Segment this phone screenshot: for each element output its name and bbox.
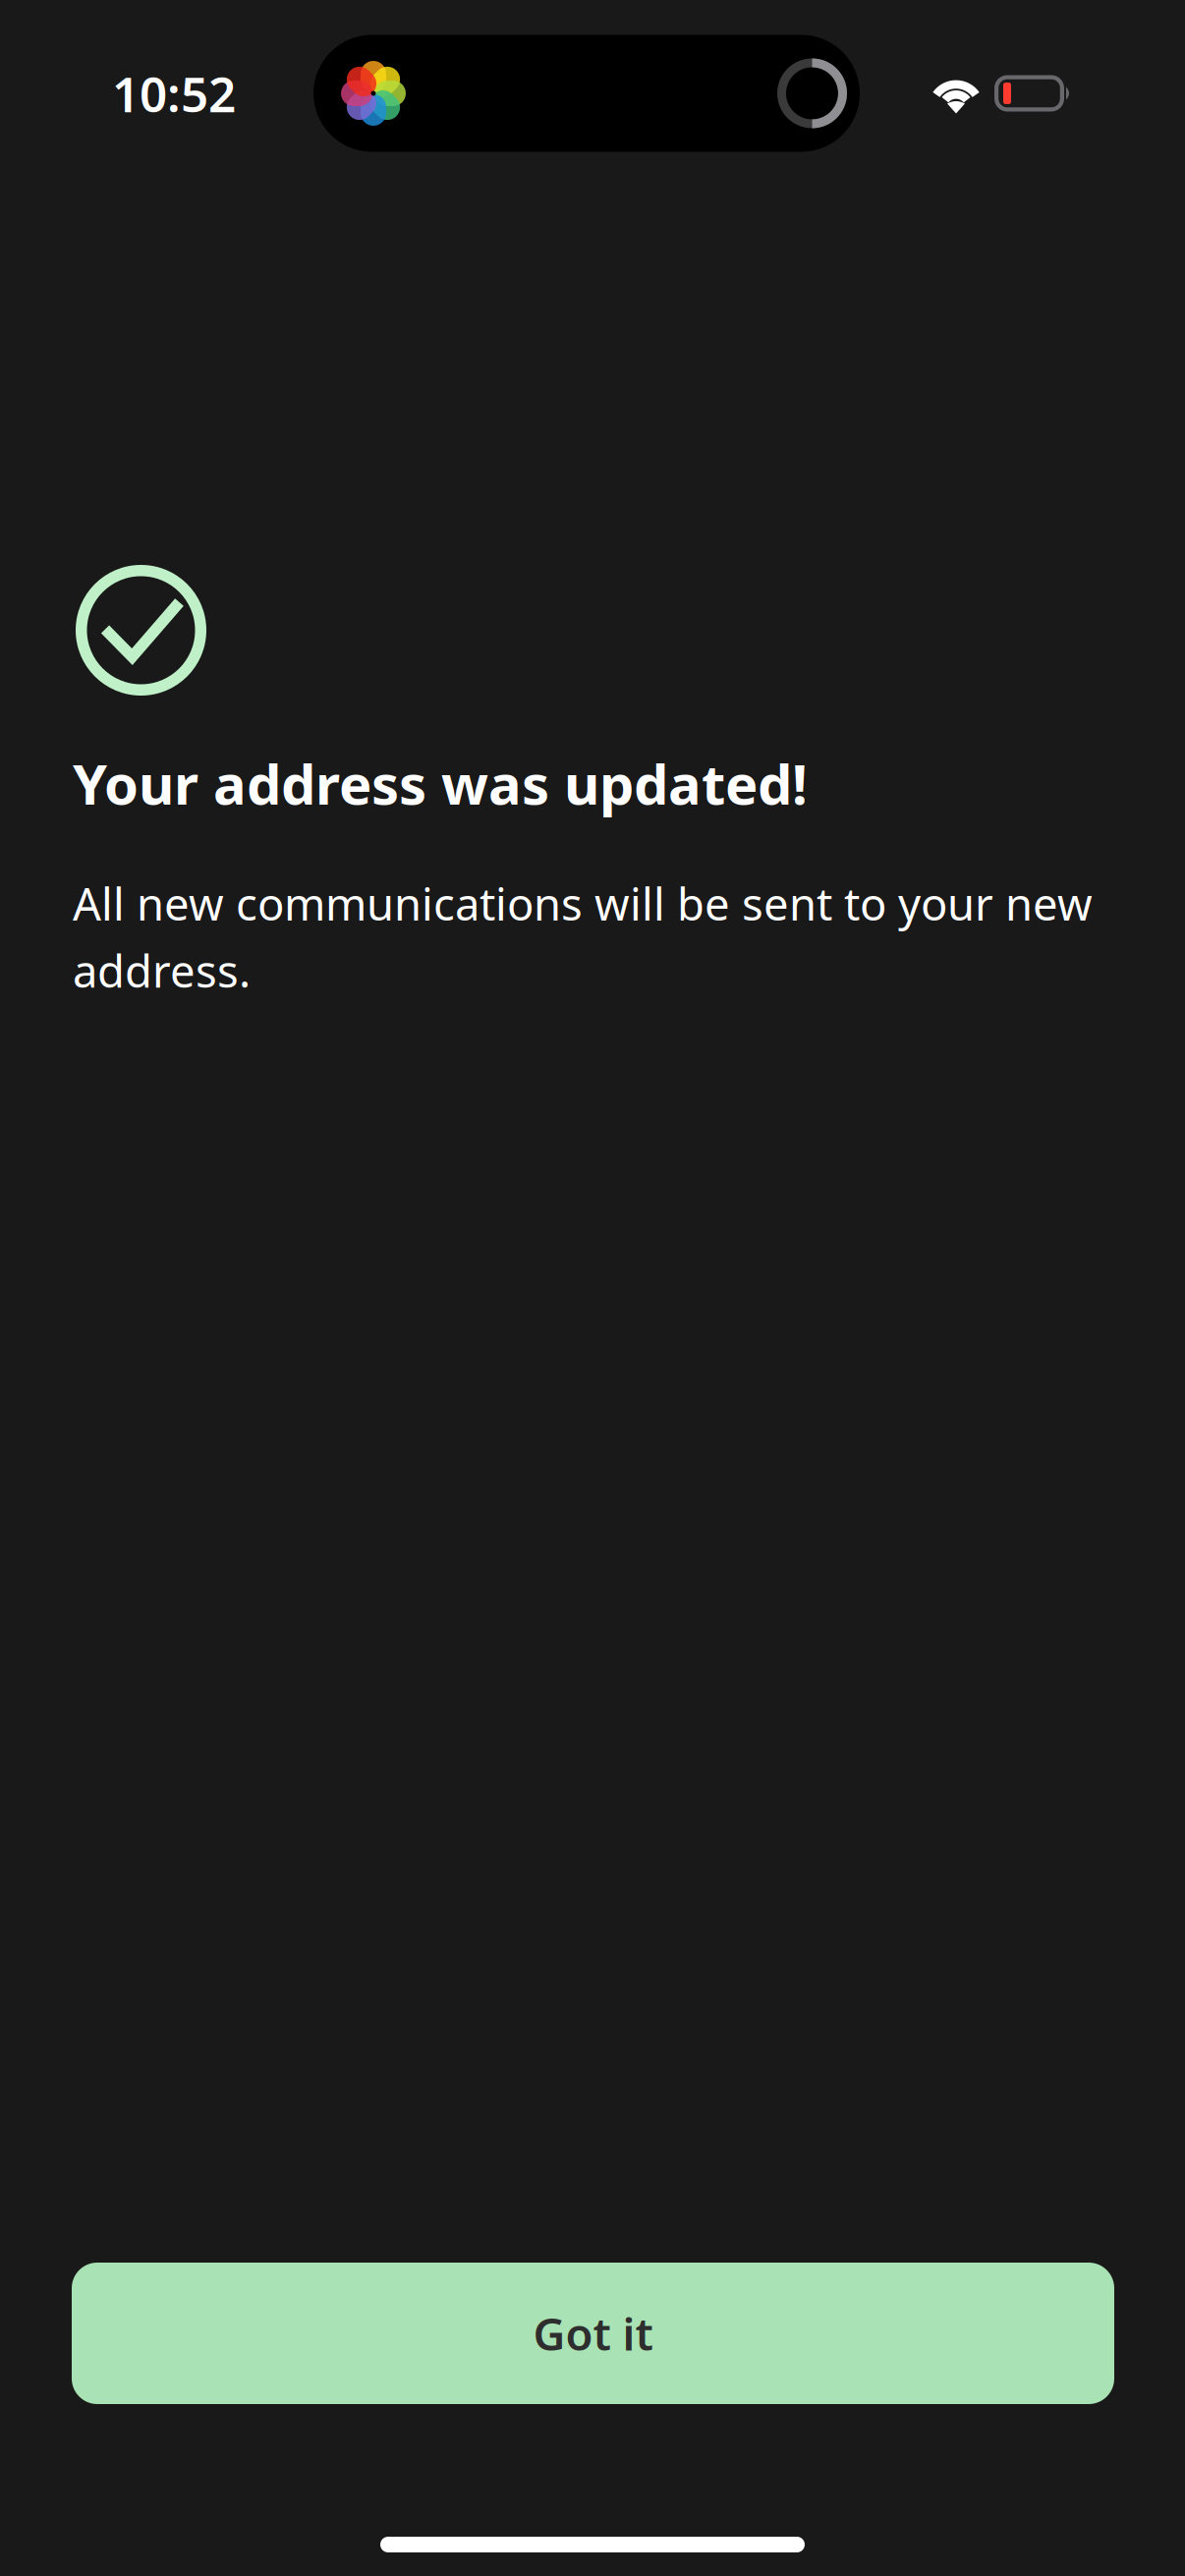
- button[interactable]: Got it: [72, 2263, 1114, 2404]
- staticText: Got it: [533, 2304, 653, 2363]
- staticText: 10:52: [112, 61, 236, 125]
- staticText: Your address was updated!: [73, 747, 808, 820]
- staticText: All new communications will be sent to y…: [73, 874, 1093, 1000]
